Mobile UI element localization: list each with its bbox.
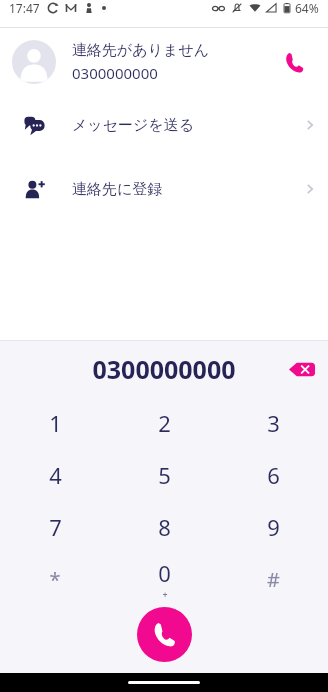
button[interactable]: 1 [0, 397, 110, 449]
button[interactable]: 削除 [282, 349, 322, 389]
staticText: 0 [158, 558, 171, 588]
staticText: 64% [295, 0, 319, 16]
button[interactable]: 3 [219, 397, 328, 449]
button[interactable]: 2 [110, 397, 219, 449]
button[interactable]: 発信 [272, 40, 316, 84]
staticText: メッセージを送る [72, 116, 302, 135]
staticText: 0300000000 [72, 63, 158, 83]
staticText: + [162, 588, 168, 600]
staticText: 17:47 [9, 0, 40, 16]
staticText: 1 [49, 408, 62, 438]
staticText: 9 [267, 512, 280, 542]
button[interactable]: 4 [0, 449, 110, 501]
button[interactable]: 6 [219, 449, 328, 501]
button[interactable]: メッセージを送る [0, 100, 328, 150]
staticText: 4 [49, 460, 62, 490]
button[interactable]: * [0, 553, 110, 605]
staticText: 5 [158, 460, 171, 490]
staticText: 3 [267, 408, 280, 438]
staticText: 8 [158, 512, 171, 542]
staticText: 6 [267, 460, 280, 490]
staticText: # [267, 566, 280, 593]
staticText: 連絡先に登録 [72, 180, 302, 199]
button[interactable]: 連絡先がありません [0, 30, 328, 94]
button[interactable]: # [219, 553, 328, 605]
staticText: 7 [49, 512, 62, 542]
button[interactable]: 5 [110, 449, 219, 501]
button[interactable]: 7 [0, 501, 110, 553]
staticText: 連絡先がありません [72, 41, 210, 60]
button[interactable]: 0 [110, 553, 219, 605]
button[interactable]: 通話 [137, 607, 192, 662]
staticText: 2 [158, 408, 171, 438]
button[interactable]: 9 [219, 501, 328, 553]
button[interactable]: 8 [110, 501, 219, 553]
staticText: 0300000000 [92, 352, 236, 386]
button[interactable]: 連絡先に登録 [0, 164, 328, 214]
staticText: * [49, 566, 61, 593]
